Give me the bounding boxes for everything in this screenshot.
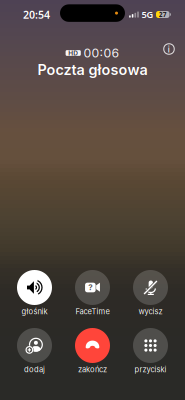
staticText: 20:54 bbox=[23, 7, 50, 22]
staticText: i bbox=[167, 43, 170, 55]
staticText: 27 bbox=[159, 10, 167, 19]
button[interactable]: wycisz bbox=[122, 270, 178, 318]
staticText: dodaj bbox=[24, 365, 45, 374]
button[interactable]: zakończ bbox=[64, 328, 120, 376]
staticText: głośnik bbox=[21, 307, 47, 316]
button[interactable]: dodaj bbox=[6, 328, 62, 376]
button[interactable]: ? bbox=[64, 270, 120, 318]
button[interactable]: przyciski bbox=[122, 328, 178, 376]
staticText: zakończ bbox=[78, 365, 107, 374]
staticText: Poczta głosowa bbox=[37, 61, 147, 78]
staticText: 00:06 bbox=[83, 46, 119, 60]
staticText: przyciski bbox=[134, 365, 166, 374]
button[interactable]: Info bbox=[159, 39, 179, 59]
staticText: HD bbox=[68, 49, 78, 57]
staticText: FaceTime bbox=[75, 307, 109, 316]
staticText: wycisz bbox=[138, 307, 162, 316]
staticText: ? bbox=[88, 282, 92, 292]
staticText: 5G bbox=[141, 8, 153, 21]
button[interactable]: głośnik bbox=[6, 270, 62, 318]
